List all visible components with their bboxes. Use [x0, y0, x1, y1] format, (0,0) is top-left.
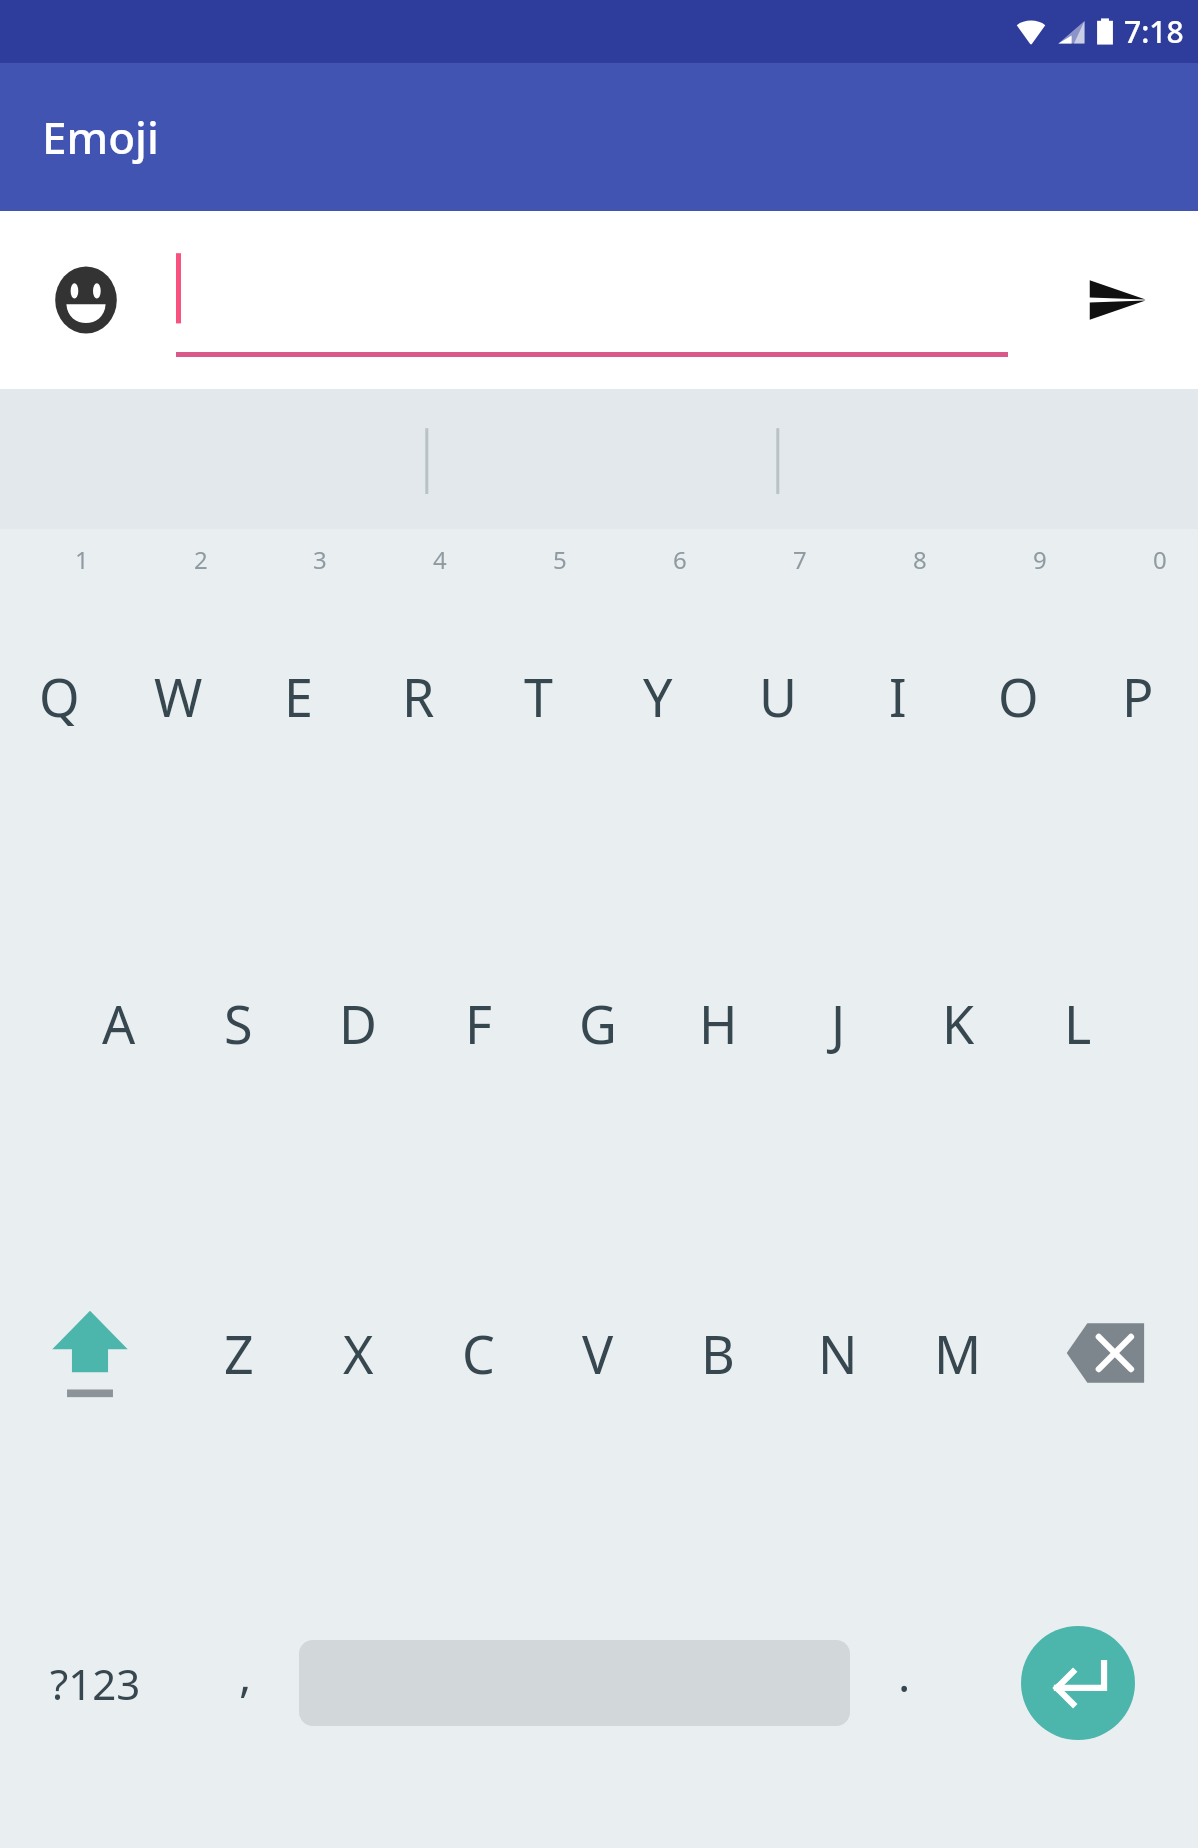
button[interactable]: Enter — [1021, 1626, 1135, 1740]
button[interactable]: 3 — [238, 529, 358, 858]
button[interactable]: , — [191, 1518, 299, 1848]
staticText: . — [898, 1643, 911, 1706]
button[interactable]: 7 — [718, 529, 838, 858]
staticText: 7:18 — [1124, 11, 1184, 52]
staticText: 0 — [1153, 543, 1167, 576]
staticText: Y — [643, 661, 673, 732]
button[interactable]: ?123 — [0, 1518, 191, 1848]
staticText: 8 — [913, 543, 927, 576]
button[interactable]: Shift — [0, 1188, 179, 1518]
button[interactable]: 5 — [478, 529, 598, 858]
staticText: K — [942, 988, 975, 1059]
staticText: 6 — [673, 543, 687, 576]
staticText: X — [343, 1318, 374, 1389]
button[interactable]: H — [658, 858, 778, 1188]
staticText: C — [462, 1318, 495, 1389]
button[interactable]: Send — [1072, 255, 1162, 345]
staticText: G — [579, 988, 617, 1059]
button[interactable]: 9 — [958, 529, 1078, 858]
staticText: 9 — [1033, 543, 1047, 576]
button[interactable]: K — [898, 858, 1018, 1188]
staticText: Emoji — [42, 107, 159, 167]
button[interactable]: N — [778, 1188, 898, 1518]
button[interactable]: A — [59, 858, 178, 1188]
button[interactable]: B — [658, 1188, 778, 1518]
staticText: Z — [224, 1318, 254, 1389]
staticText: N — [818, 1318, 858, 1389]
button[interactable]: D — [298, 858, 418, 1188]
button[interactable]: C — [418, 1188, 538, 1518]
button[interactable]: F — [418, 858, 538, 1188]
staticText: 1 — [75, 543, 89, 576]
staticText: P — [1122, 661, 1154, 732]
button[interactable]: Backspace — [1018, 1188, 1198, 1518]
button[interactable]: 2 — [119, 529, 238, 858]
button[interactable]: Emoji keyboard — [48, 262, 124, 338]
button[interactable]: V — [538, 1188, 658, 1518]
staticText: 5 — [553, 543, 567, 576]
button[interactable]: L — [1018, 858, 1138, 1188]
staticText: M — [934, 1318, 982, 1389]
button[interactable]: 6 — [598, 529, 718, 858]
button[interactable]: 8 — [838, 529, 958, 858]
staticText: Q — [39, 661, 80, 732]
staticText: E — [284, 661, 313, 732]
staticText: 7 — [793, 543, 807, 576]
staticText: S — [224, 988, 253, 1059]
button[interactable]: 1 — [0, 529, 119, 858]
staticText: ?123 — [50, 1655, 141, 1712]
staticText: V — [582, 1318, 614, 1389]
staticText: , — [239, 1643, 252, 1706]
button[interactable]: S — [178, 858, 298, 1188]
staticText: A — [102, 988, 136, 1059]
staticText: F — [465, 988, 492, 1059]
staticText: W — [154, 661, 203, 732]
button[interactable]: Z — [179, 1188, 298, 1518]
staticText: 2 — [194, 543, 208, 576]
staticText: D — [339, 988, 377, 1059]
button[interactable] — [170, 235, 1008, 365]
staticText: 4 — [433, 543, 447, 576]
staticText: I — [889, 661, 907, 732]
staticText: R — [402, 661, 435, 732]
staticText: 3 — [313, 543, 327, 576]
staticText: T — [524, 661, 553, 732]
staticText: U — [759, 661, 798, 732]
button[interactable]: X — [298, 1188, 418, 1518]
staticText: L — [1064, 988, 1092, 1059]
staticText: O — [998, 661, 1039, 732]
staticText: H — [699, 988, 738, 1059]
button[interactable]: 0 — [1078, 529, 1198, 858]
staticText: B — [701, 1318, 735, 1389]
button[interactable]: . — [850, 1518, 958, 1848]
button[interactable]: 4 — [358, 529, 478, 858]
button[interactable]: J — [778, 858, 898, 1188]
button[interactable]: G — [538, 858, 658, 1188]
button[interactable]: M — [898, 1188, 1018, 1518]
staticText: J — [831, 988, 846, 1059]
